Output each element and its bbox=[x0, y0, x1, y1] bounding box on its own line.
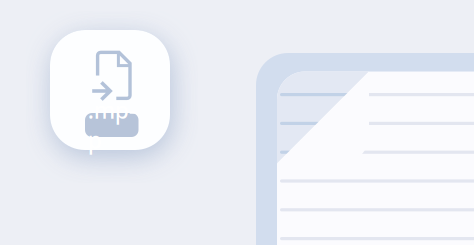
staticText: .mpp bbox=[88, 95, 136, 155]
